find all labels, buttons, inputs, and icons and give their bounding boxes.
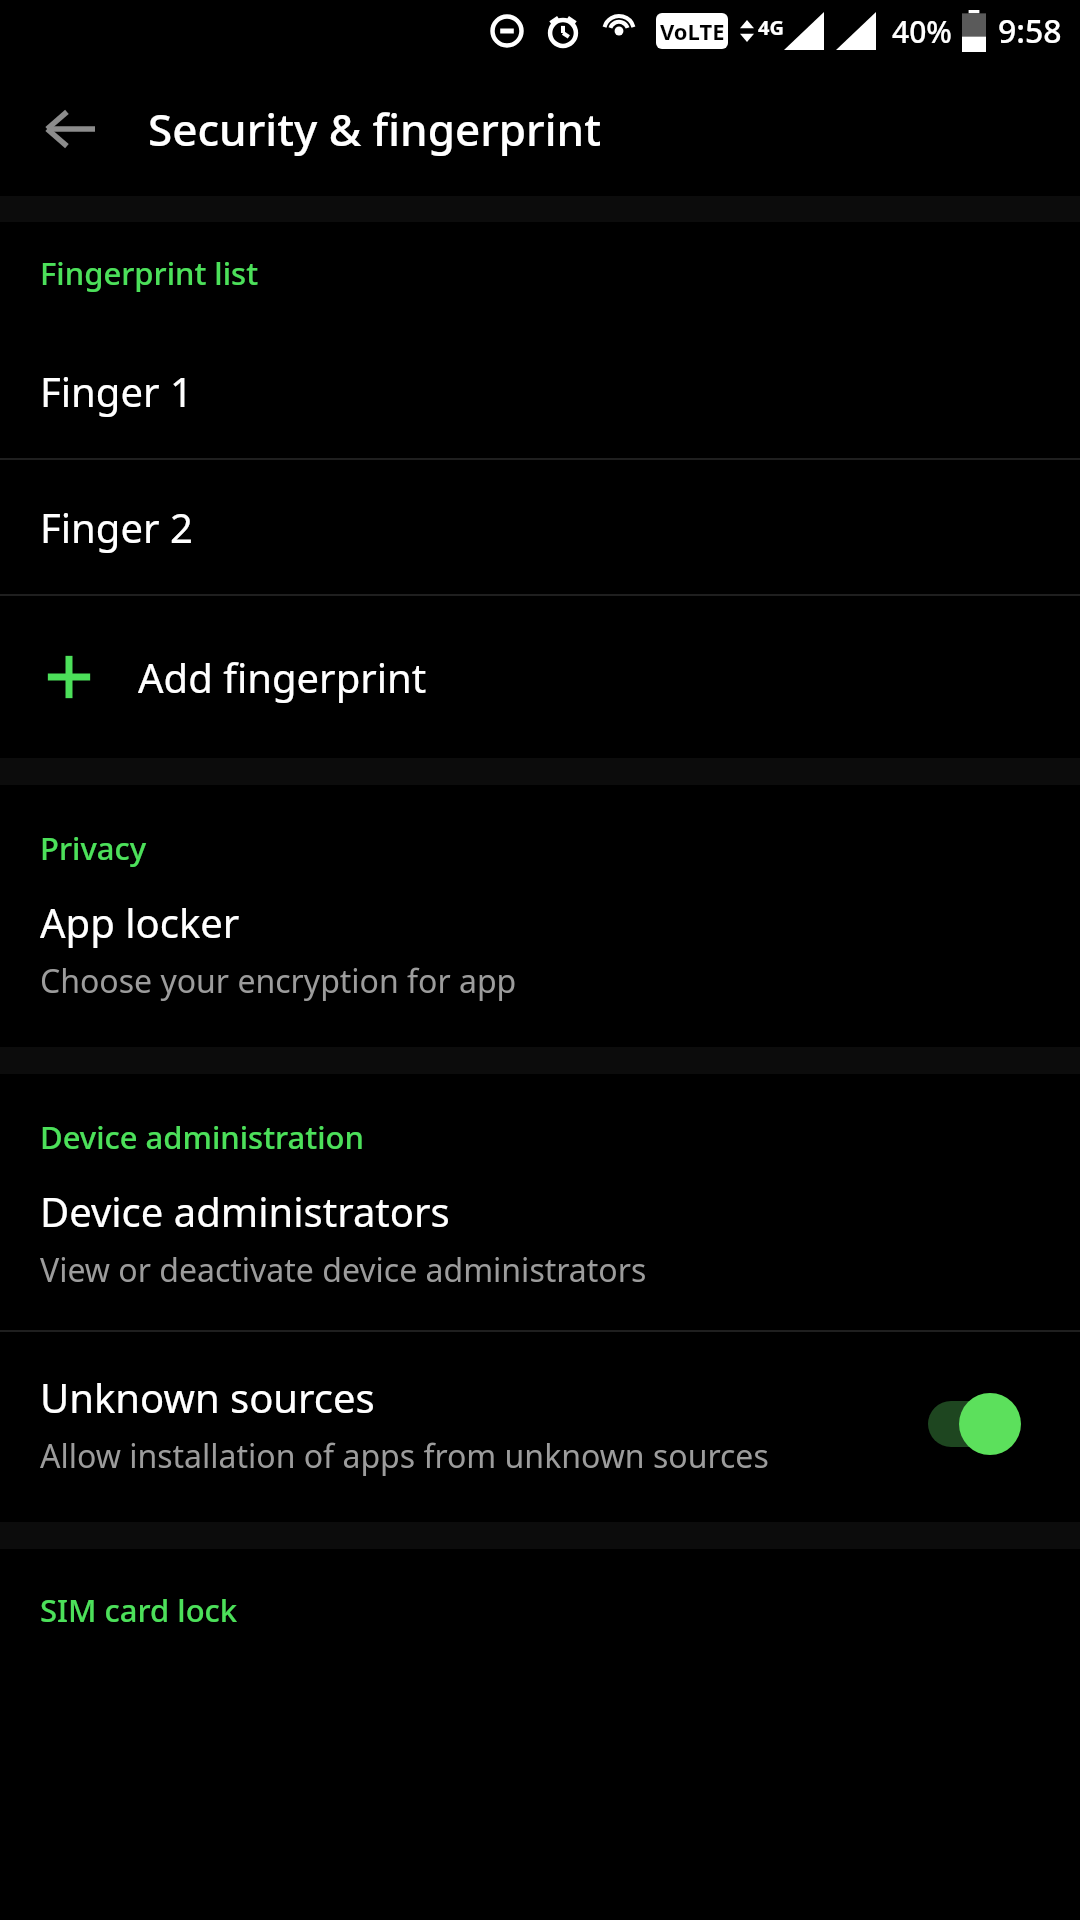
staticText: Add fingerprint [138,650,427,704]
staticText: Device administration [40,1116,364,1158]
staticText: Privacy [40,827,147,869]
button[interactable]: Finger 1 [0,324,1080,458]
staticText: 40% [892,11,952,52]
button[interactable]: Unknown sources toggle [928,1389,1040,1459]
staticText: Fingerprint list [40,252,259,294]
staticText: Finger 2 [40,500,193,554]
button[interactable]: Device administrators [0,1184,1080,1330]
staticText: View or deactivate device administrators [40,1248,647,1292]
staticText: Allow installation of apps from unknown … [40,1434,769,1478]
button[interactable]: Back [22,82,116,176]
staticText: App locker [40,895,240,949]
button[interactable]: Finger 2 [0,460,1080,594]
button[interactable]: Unknown sources [0,1332,1080,1522]
staticText: VoLTE [660,16,725,46]
button[interactable]: App locker [0,895,1080,1047]
staticText: SIM card lock [40,1589,238,1631]
staticText: Security & fingerprint [148,99,602,159]
staticText: Device administrators [40,1184,450,1238]
staticText: 9:58 [998,9,1062,53]
button[interactable]: Add fingerprint [0,596,1080,758]
staticText: Choose your encryption for app [40,959,517,1003]
staticText: 4G [758,14,784,41]
staticText: Finger 1 [40,364,193,418]
staticText: Unknown sources [40,1370,375,1424]
